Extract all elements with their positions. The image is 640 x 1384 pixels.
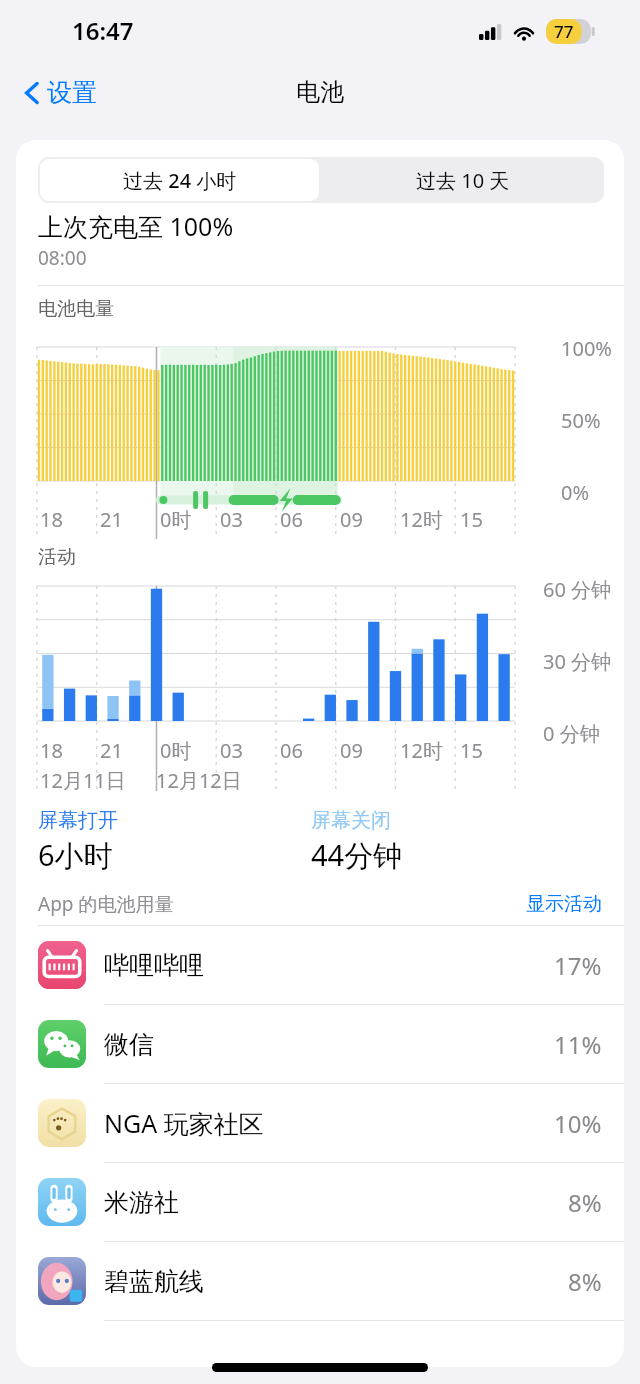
button[interactable]: NGA 玩家社区 [16,1084,624,1163]
staticText: 上次充电至 100% [38,209,234,243]
staticText: 30 分钟 [543,648,612,675]
staticText: 12月11日 [40,767,126,794]
staticText: 18 [40,506,63,533]
staticText: App 的电池用量 [38,891,174,917]
staticText: 12时 [400,737,443,764]
staticText: 过去 10 天 [416,167,510,194]
staticText: 06 [280,506,303,533]
staticText: 12月12日 [156,767,242,794]
button[interactable]: 碧蓝航线 [16,1242,624,1321]
staticText: 08:00 [38,245,87,271]
staticText: 06 [280,737,303,764]
staticText: 10% [554,1107,602,1140]
staticText: 米游社 [104,1187,179,1218]
staticText: 0% [561,479,590,506]
staticText: 0时 [160,506,192,533]
staticText: 显示活动 [526,892,602,916]
staticText: 12时 [400,506,443,533]
staticText: 100% [561,335,612,362]
staticText: 8% [568,1265,602,1298]
staticText: 6小时 [38,835,113,875]
button[interactable]: 哔哩哔哩 [16,926,624,1005]
staticText: 15 [460,737,483,764]
staticText: 16:47 [72,14,134,47]
staticText: 60 分钟 [543,576,612,603]
button[interactable]: 米游社 [16,1163,624,1242]
staticText: 屏幕打开 [38,808,118,833]
staticText: NGA 玩家社区 [104,1106,264,1140]
staticText: 活动 [38,545,76,569]
staticText: 设置 [47,77,97,108]
staticText: 哔哩哔哩 [104,950,204,981]
button[interactable]: 微信 [16,1005,624,1084]
staticText: 77 [554,20,574,43]
staticText: 碧蓝航线 [104,1266,204,1297]
staticText: 18 [40,737,63,764]
staticText: 0时 [160,737,192,764]
staticText: 电池 [296,77,344,107]
staticText: 屏幕关闭 [311,808,391,833]
staticText: 09 [340,506,363,533]
staticText: 微信 [104,1029,154,1060]
staticText: 21 [100,506,123,533]
staticText: 09 [340,737,363,764]
staticText: 电池电量 [38,297,114,321]
staticText: 03 [220,737,243,764]
button[interactable]: 过去 24 小时 [40,159,319,201]
staticText: 21 [100,737,123,764]
staticText: 8% [568,1186,602,1219]
button[interactable]: 显示活动 [526,892,602,916]
button[interactable]: 设置 [16,71,105,114]
staticText: 17% [554,949,602,982]
staticText: 50% [561,407,601,434]
staticText: 过去 24 小时 [123,167,237,194]
staticText: 44分钟 [311,835,403,875]
button[interactable]: 过去 10 天 [321,157,604,203]
staticText: 03 [220,506,243,533]
staticText: 0 分钟 [543,720,600,747]
staticText: 15 [460,506,483,533]
staticText: 11% [554,1028,602,1061]
